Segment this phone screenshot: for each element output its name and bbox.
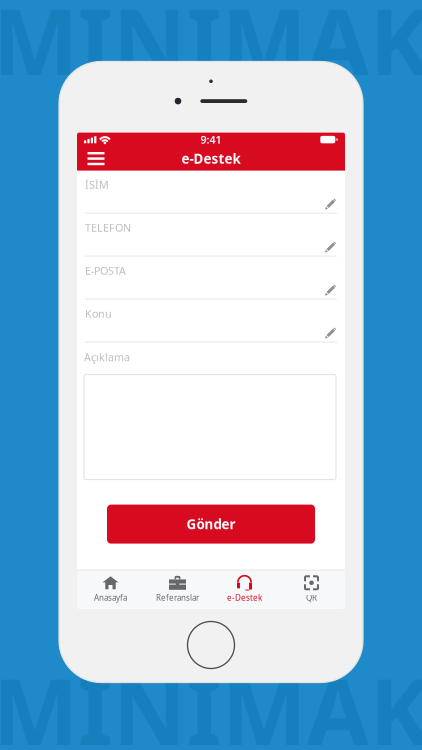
button[interactable]: TELEFON <box>77 214 345 257</box>
staticText: e-Destek <box>181 150 240 167</box>
staticText: Konu <box>85 306 112 321</box>
button[interactable]: Gönder <box>107 505 315 544</box>
staticText: e-Destek <box>227 592 262 603</box>
staticText: QR <box>306 592 317 603</box>
button[interactable]: Konu <box>77 300 345 343</box>
button[interactable]: İSİM <box>77 171 345 214</box>
staticText: MINIMAK <box>0 650 422 750</box>
staticText: Referanslar <box>156 592 199 603</box>
staticText: Gönder <box>186 515 235 533</box>
button[interactable]: QR <box>278 571 345 609</box>
button[interactable] <box>84 375 336 480</box>
staticText: E-POSTA <box>85 263 126 278</box>
button[interactable]: Menu <box>82 148 110 170</box>
button[interactable]: Referanslar <box>144 571 211 609</box>
staticText: TELEFON <box>85 220 131 235</box>
staticText: Anasayfa <box>94 592 127 603</box>
button[interactable]: e-Destek <box>211 571 278 609</box>
button[interactable]: Anasayfa <box>77 571 144 609</box>
staticText: 9:41 <box>200 132 221 147</box>
staticText: İSİM <box>85 177 109 192</box>
staticText: MINIMAK <box>0 0 422 100</box>
button[interactable]: E-POSTA <box>77 257 345 300</box>
staticText: Açıklama <box>84 350 130 364</box>
